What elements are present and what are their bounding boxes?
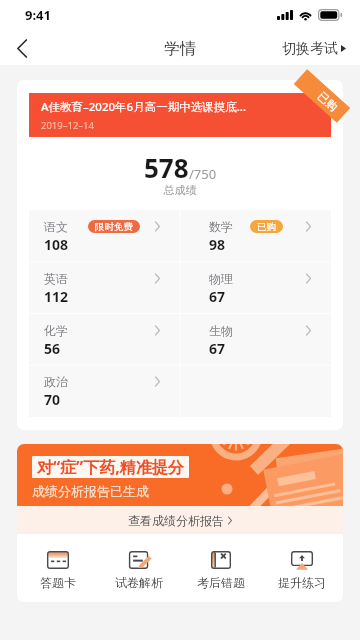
staticText: 成绩分析报告已生成 — [32, 483, 149, 499]
staticText: 政治 — [44, 374, 68, 389]
button[interactable]: 已购 — [294, 69, 350, 123]
staticText: 112 — [44, 287, 69, 306]
button[interactable]: 数学 — [180, 210, 331, 262]
button[interactable]: A佳教育–2020年6月高一期中选课摸底... — [29, 93, 331, 137]
staticText: 67 — [209, 287, 226, 306]
staticText: 对“症”下药,精准提分 — [37, 456, 184, 478]
button[interactable]: 提升练习 — [271, 541, 333, 596]
button[interactable]: 试卷解析 — [108, 541, 170, 596]
staticText: 已购 — [257, 221, 276, 233]
button[interactable]: 政治 — [29, 366, 180, 417]
button[interactable]: 英语 — [29, 262, 180, 314]
staticText: 70 — [44, 390, 61, 409]
button[interactable]: 切换考试 — [272, 32, 360, 65]
staticText: 已购 — [315, 89, 341, 114]
staticText: 数学 — [209, 219, 233, 234]
button[interactable]: 化学 — [29, 314, 180, 366]
staticText: 学情 — [164, 39, 196, 59]
button[interactable]: 答题卡 — [27, 541, 89, 596]
staticText: 9:41 — [25, 6, 51, 24]
button[interactable]: 对“症”下药,精准提分 — [17, 444, 343, 506]
staticText: 578 — [144, 150, 189, 185]
staticText: 生物 — [209, 323, 233, 338]
staticText: A佳教育–2020年6月高一期中选课摸底... — [41, 99, 247, 115]
staticText: 总成绩 — [17, 183, 343, 197]
button[interactable]: 物理 — [180, 262, 331, 314]
button[interactable]: Back — [0, 32, 44, 65]
staticText: 67 — [209, 339, 226, 358]
staticText: 物理 — [209, 271, 233, 286]
staticText: 化学 — [44, 323, 68, 338]
staticText: 查看成绩分析报告 — [128, 513, 224, 528]
staticText: 语文 — [44, 219, 68, 234]
staticText: 试卷解析 — [115, 575, 163, 590]
button[interactable]: 查看成绩分析报告 — [17, 506, 343, 534]
staticText: 切换考试 — [282, 40, 338, 58]
staticText: 答题卡 — [40, 575, 76, 590]
button[interactable]: 生物 — [180, 314, 331, 366]
staticText: /750 — [189, 165, 217, 183]
staticText: 提升练习 — [278, 575, 326, 590]
button[interactable]: 考后错题 — [190, 541, 252, 596]
button[interactable]: 语文 — [29, 210, 180, 262]
staticText: 108 — [44, 235, 69, 254]
staticText: 98 — [209, 235, 226, 254]
staticText: 英语 — [44, 271, 68, 286]
staticText: 2019–12–14 — [41, 119, 94, 132]
staticText: 考后错题 — [197, 575, 245, 590]
staticText: 限时免费 — [95, 221, 133, 233]
staticText: 56 — [44, 339, 61, 358]
